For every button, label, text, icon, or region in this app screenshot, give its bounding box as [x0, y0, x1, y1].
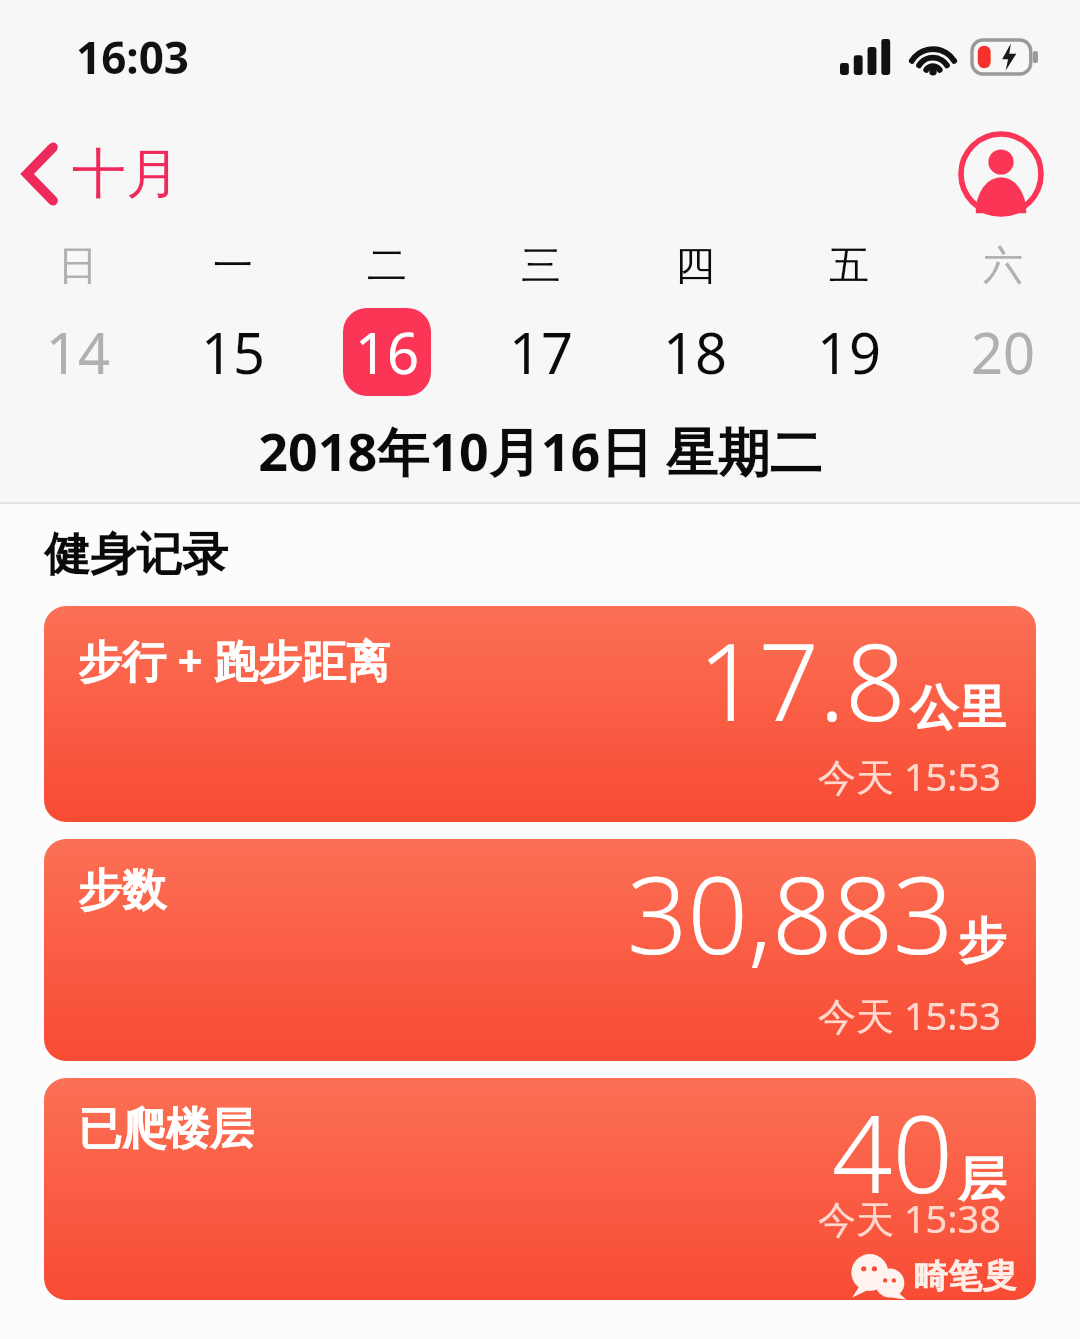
staticText: 今天 15:53 — [818, 750, 1002, 802]
staticText: 17 — [509, 314, 574, 390]
staticText: 步数 — [78, 863, 166, 918]
button[interactable]: 步行 + 跑步距离 — [44, 606, 1036, 822]
staticText: 17.8 — [698, 608, 906, 752]
button[interactable]: 步数 — [44, 839, 1036, 1061]
staticText: 步 — [958, 911, 1006, 971]
staticText: 19 — [817, 314, 882, 390]
button[interactable]: 已爬楼层 — [44, 1078, 1036, 1300]
staticText: 18 — [663, 314, 728, 390]
staticText: 30,883 — [627, 841, 954, 985]
staticText: 健身记录 — [44, 526, 228, 584]
button[interactable]: 17 — [497, 308, 585, 396]
staticText: 三 — [521, 240, 561, 290]
staticText: 一 — [213, 240, 253, 290]
button[interactable]: 16 — [343, 308, 431, 396]
button[interactable]: 十月 — [0, 134, 196, 214]
staticText: 16 — [355, 314, 420, 390]
staticText: 2018年10月16日 星期二 — [258, 415, 822, 486]
staticText: 十月 — [72, 140, 180, 208]
staticText: 16:03 — [76, 27, 190, 87]
staticText: 步行 + 跑步距离 — [78, 630, 391, 690]
staticText: 14 — [46, 314, 111, 390]
staticText: 六 — [983, 240, 1023, 290]
staticText: 今天 15:53 — [818, 989, 1002, 1041]
staticText: 四 — [675, 240, 715, 290]
button[interactable]: Profile — [958, 131, 1044, 217]
staticText: 层 — [958, 1150, 1006, 1210]
staticText: 15 — [201, 314, 266, 390]
button[interactable]: 14 — [34, 308, 122, 396]
button[interactable]: 18 — [651, 308, 739, 396]
staticText: 20 — [971, 314, 1036, 390]
staticText: 畸笔叟 — [914, 1255, 1016, 1298]
staticText: 已爬楼层 — [78, 1102, 254, 1157]
button[interactable]: 20 — [959, 308, 1047, 396]
button[interactable]: 19 — [805, 308, 893, 396]
staticText: 二 — [367, 240, 407, 290]
staticText: 今天 15:38 — [818, 1192, 1002, 1244]
staticText: 日 — [58, 240, 98, 290]
staticText: 40 — [832, 1080, 954, 1224]
staticText: 五 — [829, 240, 869, 290]
staticText: 公里 — [910, 678, 1006, 738]
button[interactable]: 15 — [189, 308, 277, 396]
